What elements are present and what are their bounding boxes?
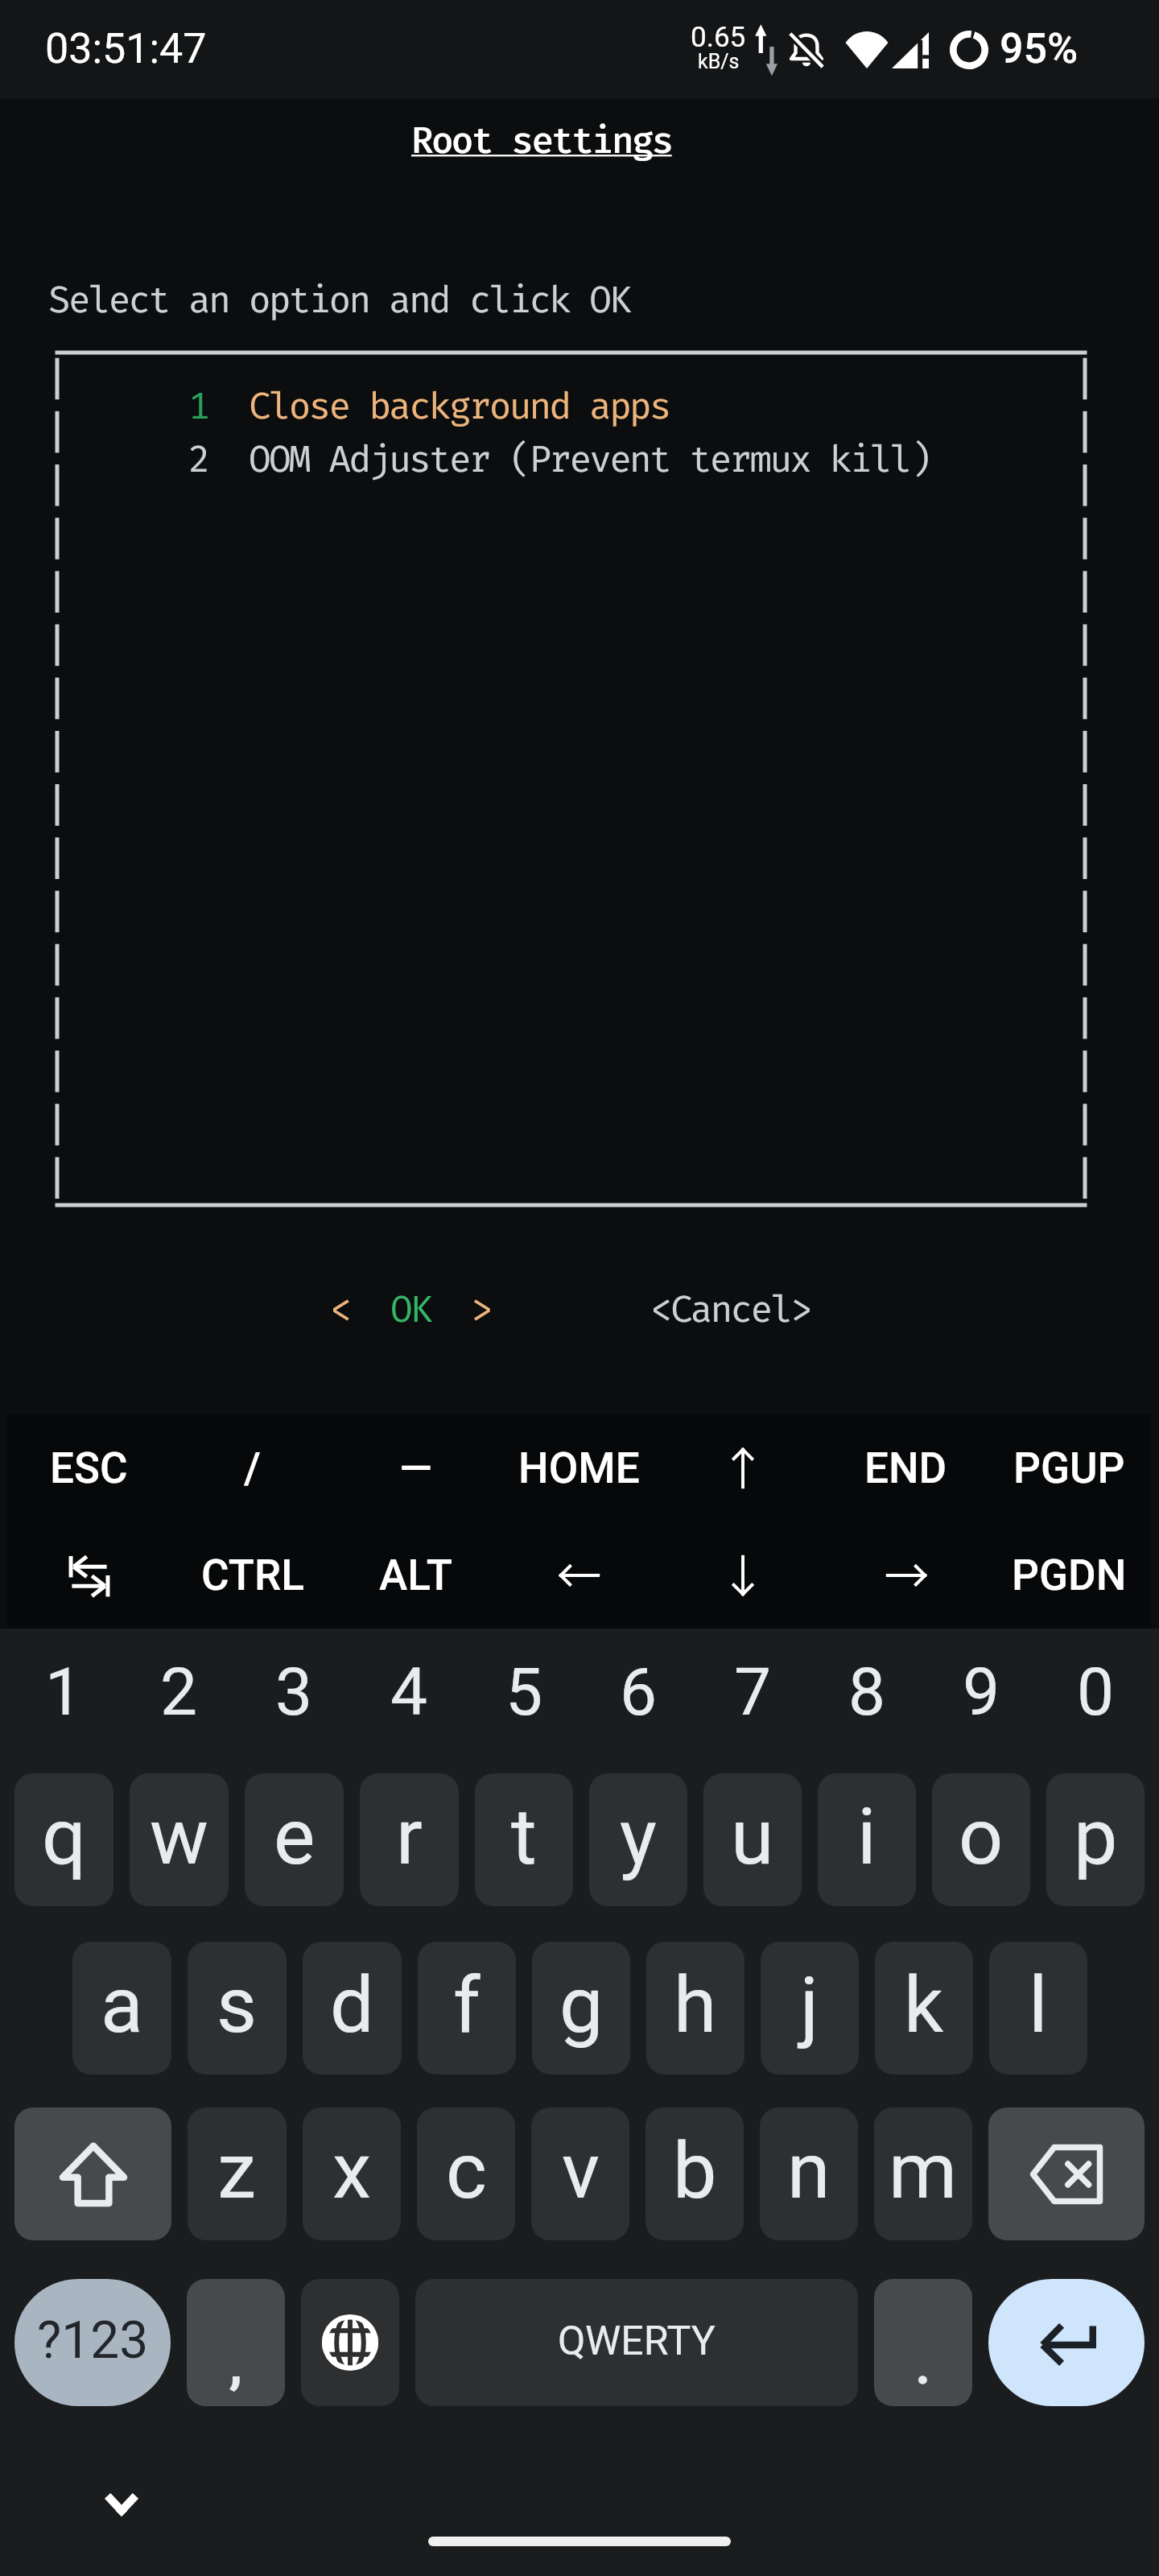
staticText: 5 (505, 1653, 543, 1731)
button[interactable]: Tab (7, 1521, 171, 1629)
button[interactable]: s (188, 1942, 287, 2074)
staticText: 2 (188, 437, 208, 481)
button[interactable]: PGDN (988, 1521, 1151, 1629)
button[interactable]: z (188, 2107, 287, 2240)
staticText: . (916, 2336, 930, 2395)
staticText: < (330, 1287, 350, 1331)
button[interactable]: / (171, 1414, 334, 1521)
staticText: x (332, 2125, 372, 2217)
button[interactable]: x (303, 2107, 401, 2240)
staticText: m (889, 2125, 958, 2217)
button[interactable]: HOME (497, 1414, 661, 1521)
button[interactable]: c (417, 2107, 515, 2240)
button[interactable]: b (645, 2107, 744, 2240)
button[interactable]: m (874, 2107, 972, 2240)
button[interactable]: 5 (467, 1629, 581, 1773)
staticText: j (800, 1959, 819, 2051)
button[interactable]: j (761, 1942, 859, 2074)
button[interactable]: 4 (352, 1629, 467, 1773)
button[interactable]: r (360, 1773, 459, 1906)
button[interactable]: Right (824, 1521, 988, 1629)
button[interactable]: g (532, 1942, 630, 2074)
staticText: a (101, 1959, 143, 2051)
button[interactable]: d (303, 1942, 402, 2074)
staticText: OOM Adjuster (Prevent termux kill) (249, 437, 930, 481)
staticText: QWERTY (558, 2318, 716, 2365)
button[interactable]: 7 (695, 1629, 810, 1773)
button[interactable]: n (760, 2107, 858, 2240)
button[interactable]: Left (497, 1521, 661, 1629)
button[interactable]: i (818, 1773, 916, 1906)
button[interactable]: e (245, 1773, 344, 1906)
button[interactable]: p (1046, 1773, 1145, 1906)
button[interactable]: 2 (122, 1629, 237, 1773)
staticText: w (150, 1791, 208, 1883)
button[interactable]: 8 (810, 1629, 924, 1773)
button[interactable]: , (187, 2279, 285, 2406)
button[interactable]: w (130, 1773, 229, 1906)
button[interactable]: q (14, 1773, 113, 1906)
button[interactable]: CTRL (171, 1521, 334, 1629)
button[interactable]: Hide keyboard (89, 2472, 154, 2537)
staticText: v (562, 2125, 600, 2217)
staticText: o (959, 1791, 1004, 1883)
staticText: — (399, 1443, 432, 1493)
button[interactable]: Change language (301, 2279, 399, 2406)
button[interactable]: 6 (581, 1629, 695, 1773)
button[interactable]: < (330, 1287, 491, 1331)
staticText: <Cancel> (650, 1287, 811, 1331)
staticText: Root settings (411, 118, 672, 163)
button[interactable]: END (824, 1414, 988, 1521)
staticText: h (674, 1959, 717, 2051)
staticText: t (511, 1791, 537, 1883)
staticText: q (42, 1791, 87, 1883)
button[interactable]: ?123 (14, 2279, 171, 2406)
staticText: i (857, 1791, 876, 1883)
staticText: / (244, 1443, 261, 1493)
staticText: 9 (963, 1653, 1000, 1731)
button[interactable]: QWERTY (415, 2279, 858, 2406)
button[interactable]: y (589, 1773, 687, 1906)
button[interactable]: l (989, 1942, 1087, 2074)
button[interactable]: ESC (7, 1414, 171, 1521)
button[interactable]: ALT (334, 1521, 497, 1629)
staticText: e (274, 1791, 316, 1883)
staticText: l (1029, 1959, 1048, 2051)
staticText: 0 (1077, 1653, 1115, 1731)
staticText: Close background apps (249, 384, 670, 428)
button[interactable]: a (72, 1942, 171, 2074)
staticText: c (446, 2125, 487, 2217)
button[interactable]: 9 (924, 1629, 1038, 1773)
button[interactable]: PGUP (988, 1414, 1151, 1521)
button[interactable]: 3 (237, 1629, 352, 1773)
button[interactable]: Backspace (988, 2107, 1145, 2240)
button[interactable]: h (646, 1942, 744, 2074)
staticText: OK (390, 1287, 431, 1331)
staticText: END (864, 1443, 947, 1493)
button[interactable]: u (703, 1773, 802, 1906)
staticText: 1 (188, 384, 208, 428)
button[interactable]: 1 (6, 1629, 122, 1773)
button[interactable]: Down (661, 1521, 824, 1629)
staticText: > (471, 1287, 491, 1331)
staticText: r (396, 1791, 423, 1883)
button[interactable]: Up (661, 1414, 824, 1521)
button[interactable]: Enter (988, 2279, 1145, 2406)
staticText: 3 (275, 1653, 313, 1731)
button[interactable]: Shift (14, 2107, 171, 2240)
staticText: s (217, 1959, 258, 2051)
button[interactable]: o (932, 1773, 1030, 1906)
staticText: ESC (50, 1443, 128, 1493)
staticText: y (620, 1791, 657, 1883)
staticText: u (731, 1791, 774, 1883)
button[interactable]: f (418, 1942, 516, 2074)
button[interactable]: k (875, 1942, 973, 2074)
staticText: 03:51:47 (45, 24, 207, 73)
button[interactable]: — (334, 1414, 497, 1521)
button[interactable]: v (531, 2107, 629, 2240)
button[interactable]: t (475, 1773, 573, 1906)
button[interactable]: . (874, 2279, 972, 2406)
button[interactable]: 0 (1038, 1629, 1153, 1773)
button[interactable]: <Cancel> (650, 1287, 811, 1331)
